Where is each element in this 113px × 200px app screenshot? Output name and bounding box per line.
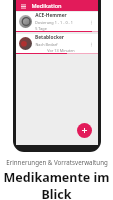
staticText: Medikation [31,2,62,10]
staticText: Betablocker [35,34,64,41]
staticText: Medikamente im Blick [0,169,113,200]
staticText: 5 Tage [35,26,47,31]
staticText: Erinnerungen & Vorratsverwaltung [6,158,108,166]
staticText: ACE-Hemmer [35,12,67,19]
staticText: Vor 13 Minuten eingenommen [35,48,87,53]
staticText: Dosierung 1 - 1 - 0 - 1 [35,20,73,25]
button[interactable]: ACE-Hemmer [16,12,98,32]
button[interactable]: Betablocker [16,34,98,54]
staticText: Nach Bedarf [35,42,58,47]
button[interactable]: Medikament hinzufügen [77,123,92,138]
button[interactable]: Weitere Optionen [87,18,95,26]
button[interactable]: Menü [19,2,27,10]
button[interactable]: Weitere Optionen [87,40,95,48]
